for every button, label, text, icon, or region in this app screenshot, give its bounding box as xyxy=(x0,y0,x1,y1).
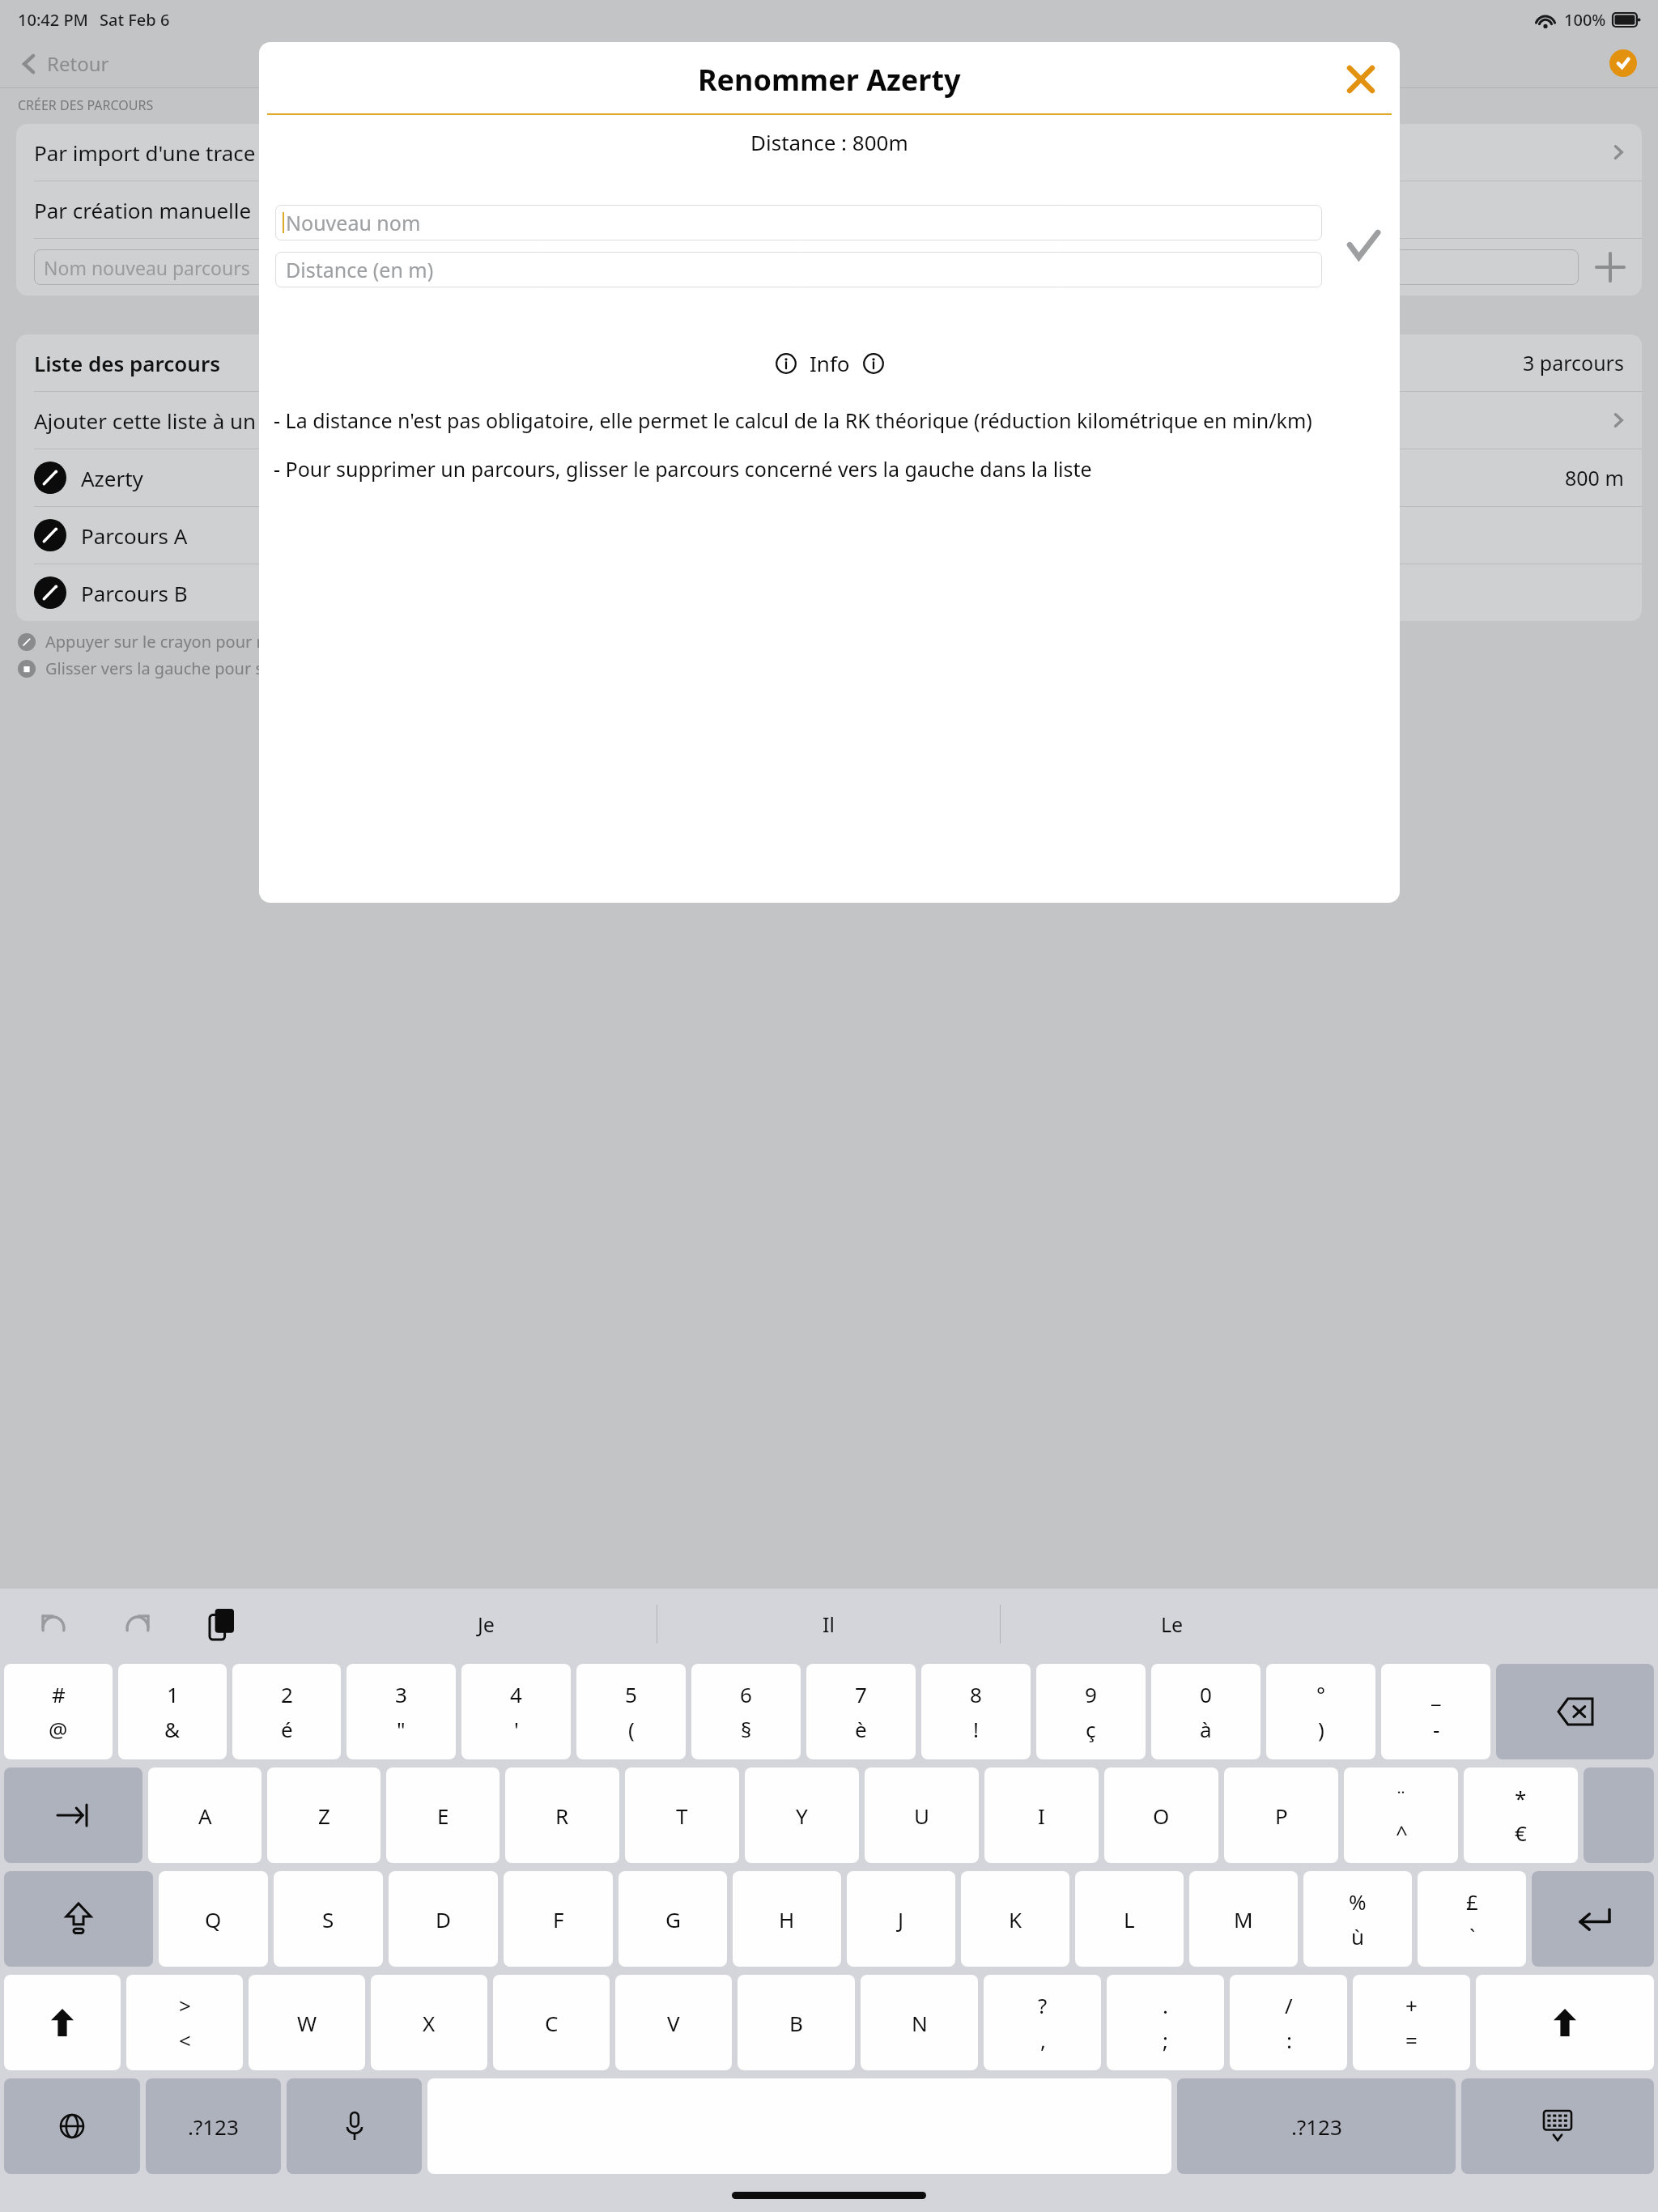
button[interactable]: K xyxy=(961,1871,1069,1967)
button[interactable]: T xyxy=(625,1767,739,1863)
staticText: Ajouter cette liste à un carnet xyxy=(34,406,325,435)
button[interactable]: A xyxy=(148,1767,261,1863)
button[interactable]: 4 xyxy=(461,1664,571,1759)
button[interactable]: 3 xyxy=(346,1664,456,1759)
button[interactable]: N xyxy=(861,1975,978,2070)
button[interactable] xyxy=(1584,1767,1654,1863)
button[interactable]: S xyxy=(274,1871,383,1967)
button[interactable]: L xyxy=(1075,1871,1184,1967)
button[interactable]: B xyxy=(738,1975,855,2070)
button[interactable]: Parcours B xyxy=(16,564,1642,621)
button[interactable]: Azerty xyxy=(16,449,1642,506)
staticText: ° xyxy=(1316,1680,1326,1708)
staticText: ^ xyxy=(1396,1819,1408,1847)
button[interactable]: Valider xyxy=(1609,49,1637,77)
staticText: Retour xyxy=(47,50,109,77)
button[interactable]: ¨ xyxy=(1344,1767,1458,1863)
button[interactable]: % xyxy=(1303,1871,1412,1967)
button[interactable]: C xyxy=(493,1975,610,2070)
button[interactable]: shiftL xyxy=(4,1975,121,2070)
button[interactable]: Retour xyxy=(16,45,114,82)
button[interactable]: Distance (en m) xyxy=(275,252,1322,287)
button[interactable]: Par import d'une trace GPX xyxy=(16,124,1642,181)
button[interactable]: Z xyxy=(267,1767,380,1863)
button[interactable]: ? xyxy=(984,1975,1101,2070)
staticText: + xyxy=(1405,1991,1418,2019)
button[interactable]: 0 xyxy=(1151,1664,1261,1759)
button[interactable]: G xyxy=(619,1871,727,1967)
button[interactable]: mic xyxy=(287,2078,422,2174)
button[interactable]: 2 xyxy=(232,1664,341,1759)
button[interactable]: paste xyxy=(201,1603,243,1645)
button[interactable]: Il xyxy=(657,1589,1000,1660)
staticText: W xyxy=(297,2009,317,2037)
button[interactable]: kbd xyxy=(1461,2078,1654,2174)
button[interactable]: P xyxy=(1224,1767,1338,1863)
button[interactable]: V xyxy=(615,1975,732,2070)
staticText: P xyxy=(1275,1802,1288,1830)
button[interactable]: 7 xyxy=(806,1664,916,1759)
staticText: 1 xyxy=(167,1680,179,1708)
button[interactable]: E xyxy=(386,1767,500,1863)
staticText: T xyxy=(676,1802,688,1830)
button[interactable]: * xyxy=(1464,1767,1578,1863)
button[interactable]: . xyxy=(1107,1975,1224,2070)
button[interactable]: Confirmer xyxy=(1340,223,1387,270)
staticText: Nouveau nom xyxy=(286,209,421,236)
staticText: £ xyxy=(1466,1887,1478,1916)
button[interactable]: shiftR xyxy=(1476,1975,1654,2070)
button[interactable]: > xyxy=(126,1975,243,2070)
button[interactable]: redo xyxy=(117,1603,159,1645)
button[interactable]: W xyxy=(249,1975,365,2070)
staticText: .?123 xyxy=(1291,2112,1342,2141)
staticText: Z xyxy=(318,1802,330,1830)
staticText: Y xyxy=(796,1802,808,1830)
button[interactable]: 5 xyxy=(576,1664,686,1759)
button[interactable]: .?123 xyxy=(1177,2078,1456,2174)
staticText: ç xyxy=(1086,1715,1096,1743)
button[interactable] xyxy=(427,2078,1171,2174)
staticText: I xyxy=(1038,1802,1045,1830)
staticText: F xyxy=(553,1905,564,1933)
button[interactable]: + xyxy=(1353,1975,1470,2070)
button[interactable]: M xyxy=(1189,1871,1298,1967)
staticText: Appuyer sur le crayon pour renommer xyxy=(45,631,338,653)
button[interactable]: tab xyxy=(4,1767,142,1863)
button[interactable]: O xyxy=(1104,1767,1218,1863)
button[interactable]: ret xyxy=(1532,1871,1654,1967)
button[interactable]: 9 xyxy=(1036,1664,1146,1759)
button[interactable]: Par création manuelle xyxy=(16,181,1642,238)
button[interactable]: globe xyxy=(4,2078,140,2174)
button[interactable]: .?123 xyxy=(146,2078,281,2174)
button[interactable]: Y xyxy=(745,1767,859,1863)
button[interactable]: Fermer xyxy=(1343,62,1379,97)
staticText: 100% xyxy=(1564,9,1606,31)
button[interactable]: Le xyxy=(1001,1589,1343,1660)
button[interactable]: Ajouter cette liste à un carnet xyxy=(16,392,1642,449)
button[interactable]: ° xyxy=(1266,1664,1375,1759)
button[interactable]: Q xyxy=(159,1871,268,1967)
button[interactable]: I xyxy=(984,1767,1099,1863)
button[interactable]: Je xyxy=(315,1589,657,1660)
staticText: é xyxy=(281,1715,293,1743)
button[interactable]: F xyxy=(504,1871,613,1967)
button[interactable]: X xyxy=(371,1975,487,2070)
button[interactable]: 6 xyxy=(691,1664,801,1759)
button[interactable]: Nouveau nom xyxy=(275,205,1322,240)
staticText: % xyxy=(1349,1887,1367,1916)
button[interactable]: J xyxy=(847,1871,955,1967)
button[interactable]: D xyxy=(389,1871,498,1967)
button[interactable]: undo xyxy=(32,1603,74,1645)
button[interactable]: / xyxy=(1230,1975,1347,2070)
button[interactable]: # xyxy=(4,1664,113,1759)
button[interactable]: Parcours A xyxy=(16,507,1642,564)
button[interactable]: 1 xyxy=(118,1664,227,1759)
button[interactable]: H xyxy=(733,1871,841,1967)
button[interactable]: £ xyxy=(1418,1871,1526,1967)
button[interactable]: U xyxy=(865,1767,979,1863)
button[interactable]: caps xyxy=(4,1871,153,1967)
button[interactable]: 8 xyxy=(921,1664,1031,1759)
button[interactable]: R xyxy=(505,1767,619,1863)
button[interactable]: _ xyxy=(1381,1664,1490,1759)
button[interactable]: bksp xyxy=(1496,1664,1654,1759)
